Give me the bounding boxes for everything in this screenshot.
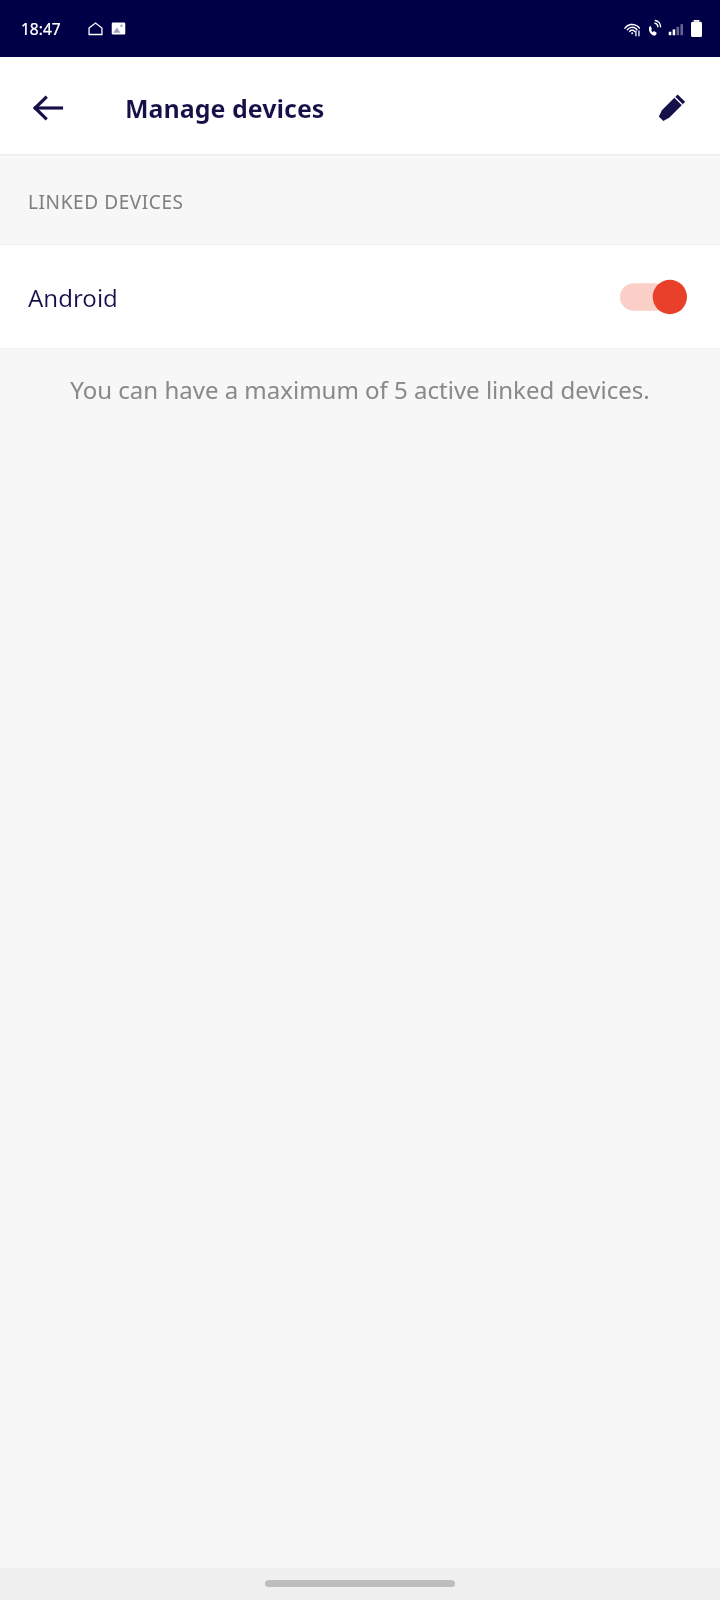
button[interactable]: Toggle Android device — [620, 275, 688, 319]
staticText: Android — [28, 281, 118, 314]
button[interactable]: Edit — [638, 74, 706, 142]
staticText: LINKED DEVICES — [28, 189, 184, 215]
staticText: 18:47 — [21, 18, 61, 39]
button[interactable]: Android — [0, 245, 720, 349]
staticText: Manage devices — [125, 91, 325, 125]
button[interactable]: Back — [12, 72, 84, 144]
staticText: You can have a maximum of 5 active linke… — [36, 373, 684, 406]
